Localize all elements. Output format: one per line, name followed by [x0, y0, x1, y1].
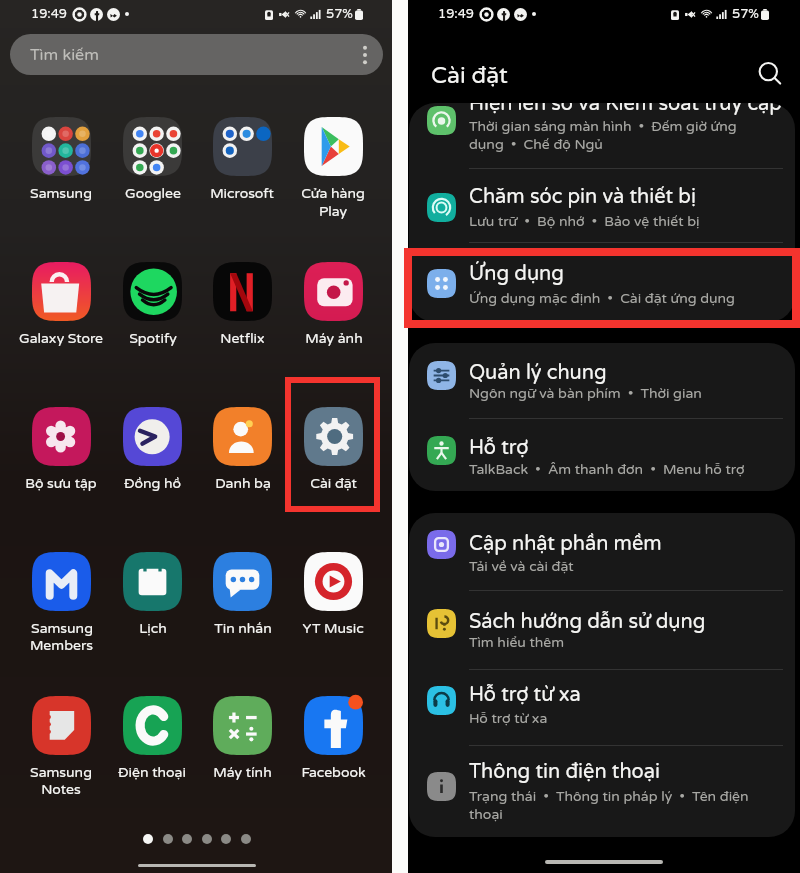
staticText: Cài đặt [310, 475, 357, 492]
staticText: Samsung [31, 620, 93, 637]
staticText: Samsung [30, 185, 92, 202]
staticText: Lịch [139, 620, 167, 637]
button[interactable]: Máy ảnh [286, 262, 380, 378]
staticText: Notes [41, 781, 81, 798]
staticText: 19:49 [438, 6, 475, 22]
staticText: Ngôn ngữ và bàn phím • Thời gian [469, 385, 702, 402]
staticText: Thông tin điện thoại [469, 760, 660, 784]
button[interactable]: Tin nhắn [195, 552, 289, 668]
staticText: Chăm sóc pin và thiết bị [469, 185, 696, 209]
button[interactable]: Cài đặt [286, 407, 380, 523]
staticText: Cập nhật phần mềm [469, 532, 662, 556]
staticText: Cửa hàng Play [286, 185, 380, 220]
button[interactable]: Tìm kiếm [10, 34, 383, 75]
staticText: Googlee [125, 185, 181, 202]
button[interactable]: Máy tính [195, 696, 289, 812]
staticText: 57% [326, 6, 353, 22]
staticText: Điện thoại [118, 764, 186, 781]
staticText: Tìm hiểu thêm [469, 634, 565, 651]
staticText: Members [30, 637, 93, 654]
staticText: Spotify [129, 330, 177, 347]
staticText: Cài đặt [431, 62, 508, 90]
staticText: Tìm kiếm [30, 45, 99, 64]
staticText: Microsoft [210, 185, 274, 202]
button[interactable]: Galaxy Store [14, 262, 108, 378]
staticText: Hỗ trợ từ xa [469, 683, 581, 707]
staticText: Lưu trữ • Bộ nhớ • Bảo vệ thiết bị [469, 213, 700, 230]
staticText: Máy ảnh [305, 330, 363, 347]
staticText: Samsung [30, 764, 92, 781]
staticText: Hỗ trợ từ xa [469, 710, 548, 727]
staticText: Tin nhắn [214, 620, 272, 637]
staticText: Danh bạ [215, 475, 271, 492]
button[interactable]: Netflix [195, 262, 289, 378]
button[interactable]: Danh bạ [195, 407, 289, 523]
button[interactable] [408, 252, 796, 324]
button[interactable]: Facebook [286, 696, 380, 812]
staticText: Facebook [301, 764, 366, 781]
staticText: Galaxy Store [19, 330, 103, 347]
staticText: Đồng hồ [124, 475, 181, 492]
staticText: Hiện lên số và Kiểm soát truy cập [469, 103, 782, 116]
staticText: 19:49 [31, 6, 68, 22]
staticText: 57% [732, 6, 759, 22]
staticText: TalkBack • Âm thanh đơn • Menu hỗ trợ [469, 461, 745, 478]
button[interactable]: Spotify [105, 262, 199, 378]
staticText: Ứng dụng mặc định • Cài đặt ứng dụng [469, 290, 735, 307]
button[interactable]: Googlee [105, 117, 199, 233]
staticText: Sách hướng dẫn sử dụng [469, 610, 706, 634]
staticText: Quản lý chung [469, 361, 607, 385]
staticText: Máy tính [213, 764, 272, 781]
button[interactable]: Search [753, 57, 787, 91]
staticText: Ứng dụng [469, 262, 564, 286]
staticText: Hỗ trợ [469, 436, 529, 460]
button[interactable]: Lịch [105, 552, 199, 668]
button[interactable]: Microsoft [195, 117, 289, 233]
staticText: Tải về và cài đặt [469, 558, 574, 575]
button[interactable]: Samsung [14, 117, 108, 233]
button[interactable]: Cửa hàng Play [286, 117, 380, 233]
button[interactable]: YT Music [286, 552, 380, 668]
staticText: Trạng thái • Thông tin pháp lý • Tên điệ… [469, 788, 749, 823]
button[interactable]: Samsung [14, 696, 108, 812]
button[interactable]: Samsung [14, 552, 108, 668]
button[interactable]: Đồng hồ [105, 407, 199, 523]
button[interactable]: Điện thoại [105, 696, 199, 812]
staticText: Thời gian sáng màn hình • Đếm giờ ứng dụ… [469, 118, 737, 153]
staticText: Netflix [220, 330, 265, 347]
staticText: YT Music [302, 620, 364, 637]
staticText: Bộ sưu tập [25, 475, 97, 492]
button[interactable]: Bộ sưu tập [14, 407, 108, 523]
